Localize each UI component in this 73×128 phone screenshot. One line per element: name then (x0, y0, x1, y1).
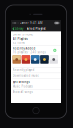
staticText: Select Playlist (26, 27, 45, 30)
staticText: Sync Settings (12, 80, 29, 84)
staticText: Carrier (19, 21, 28, 25)
button[interactable]: All Playlists (11, 36, 61, 44)
staticText: 16 playlists · 240 songs (12, 50, 45, 54)
staticText: Library (15, 27, 23, 30)
button[interactable]: Recently Added (11, 46, 61, 54)
staticText: Recently Added (12, 47, 35, 50)
staticText: 32 items (12, 41, 24, 44)
staticText: Music, Podcasts (12, 85, 32, 88)
staticText: ON MY IPHONE (12, 33, 32, 36)
staticText: Downloaded music (12, 74, 38, 77)
button[interactable]: Library (11, 26, 24, 32)
staticText: Show all songs (12, 90, 32, 94)
staticText: Recently played (12, 68, 34, 72)
staticText: All Playlists (12, 37, 27, 41)
staticText: 9:41 AM (30, 21, 42, 25)
